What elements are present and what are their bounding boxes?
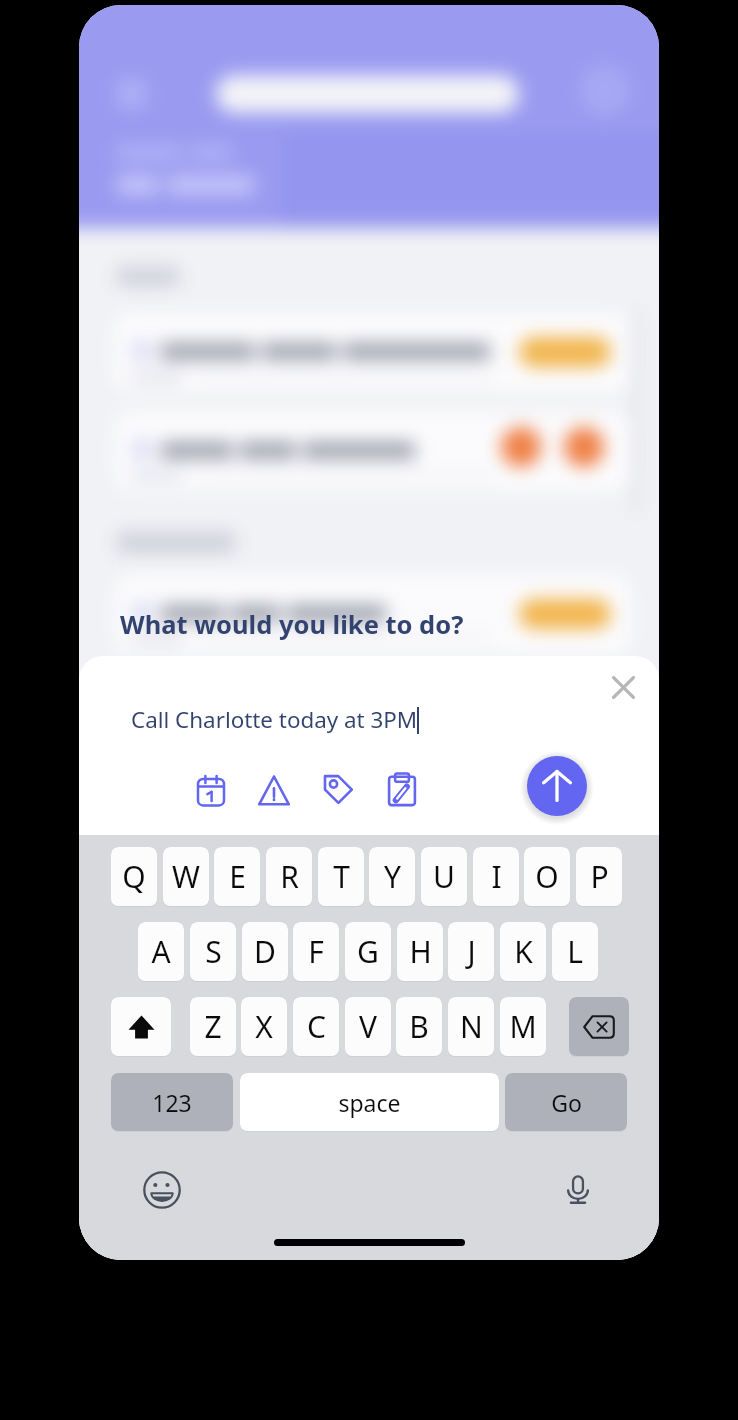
button[interactable]: Set priority <box>253 768 295 810</box>
staticText: U <box>433 856 455 897</box>
staticText: E <box>229 856 246 897</box>
staticText: N <box>460 1006 483 1047</box>
button[interactable]: V <box>345 997 391 1056</box>
button[interactable]: C <box>293 997 339 1056</box>
button[interactable]: L <box>552 922 598 981</box>
staticText: B <box>409 1006 429 1047</box>
staticText: G <box>357 931 379 972</box>
button[interactable]: A <box>138 922 184 981</box>
staticText: K <box>514 931 533 972</box>
button[interactable]: N <box>448 997 494 1056</box>
button[interactable]: S <box>190 922 236 981</box>
staticText: M <box>509 1006 537 1047</box>
button[interactable]: Go <box>505 1073 627 1131</box>
button[interactable]: D <box>242 922 288 981</box>
staticText: C <box>307 1006 326 1047</box>
staticText: Q <box>122 856 146 897</box>
button[interactable]: Add note <box>381 768 423 810</box>
button[interactable]: H <box>397 922 443 981</box>
staticText: V <box>359 1006 377 1047</box>
staticText: Go <box>551 1087 582 1118</box>
staticText: S <box>205 931 222 972</box>
staticText: Z <box>204 1006 222 1047</box>
button[interactable]: Close <box>603 667 643 707</box>
button[interactable]: Y <box>369 847 415 906</box>
staticText: D <box>254 931 276 972</box>
staticText: I <box>491 856 502 897</box>
button[interactable]: space <box>240 1073 499 1131</box>
button[interactable]: O <box>524 847 570 906</box>
button[interactable]: T <box>318 847 364 906</box>
staticText: L <box>567 931 583 972</box>
staticText: F <box>308 931 324 972</box>
button[interactable]: X <box>241 997 287 1056</box>
staticText: space <box>338 1087 401 1118</box>
button[interactable]: Backspace <box>569 997 629 1056</box>
staticText: Call Charlotte today at 3PM <box>131 704 418 735</box>
button[interactable]: M <box>500 997 546 1056</box>
staticText: O <box>535 856 559 897</box>
button[interactable]: I <box>473 847 519 906</box>
staticText: T <box>333 856 350 897</box>
staticText: X <box>255 1006 273 1047</box>
button[interactable]: Add label <box>317 768 359 810</box>
button[interactable]: Shift <box>111 997 171 1056</box>
staticText: 123 <box>152 1087 192 1118</box>
button[interactable]: Z <box>190 997 236 1056</box>
button[interactable]: K <box>500 922 546 981</box>
button[interactable]: F <box>293 922 339 981</box>
button[interactable]: Voice input <box>558 1170 598 1210</box>
staticText: J <box>467 931 476 972</box>
button[interactable]: R <box>266 847 312 906</box>
staticText: H <box>409 931 432 972</box>
button[interactable]: J <box>448 922 494 981</box>
button[interactable]: G <box>345 922 391 981</box>
button[interactable]: 123 <box>111 1073 233 1131</box>
staticText: What would you like to do? <box>120 607 464 642</box>
staticText: A <box>151 931 171 972</box>
staticText: P <box>590 856 609 897</box>
button[interactable]: U <box>421 847 467 906</box>
button[interactable]: B <box>396 997 442 1056</box>
staticText: W <box>172 856 200 897</box>
button[interactable]: Send <box>527 756 587 816</box>
staticText: Y <box>384 856 401 897</box>
staticText: R <box>280 856 299 897</box>
button[interactable]: Emoji <box>142 1170 182 1210</box>
button[interactable]: W <box>163 847 209 906</box>
button[interactable]: E <box>214 847 260 906</box>
button[interactable]: P <box>576 847 622 906</box>
button[interactable]: Q <box>111 847 157 906</box>
button[interactable]: Set date <box>190 768 232 810</box>
